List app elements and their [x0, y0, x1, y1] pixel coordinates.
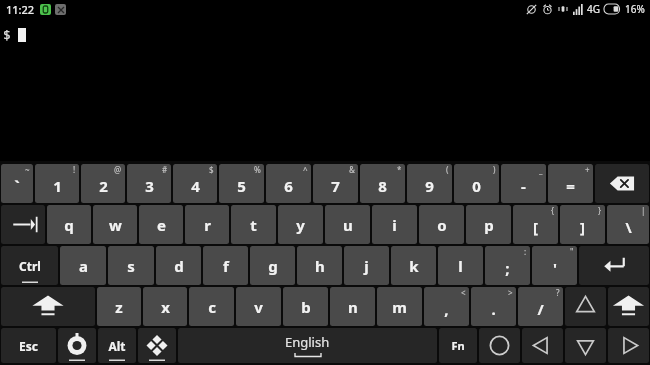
button[interactable]: Backspace	[595, 164, 649, 203]
button[interactable]: @	[81, 164, 125, 203]
button[interactable]: ^	[266, 164, 311, 203]
button[interactable]: Arrow down	[565, 328, 606, 363]
staticText: b	[301, 297, 311, 317]
staticText: 4G	[587, 2, 600, 16]
button[interactable]: i	[372, 205, 417, 244]
staticText: @	[114, 164, 122, 175]
button[interactable]: Symbols	[138, 328, 176, 363]
button[interactable]: Arrow up	[565, 287, 606, 326]
button[interactable]: e	[139, 205, 183, 244]
staticText: /	[537, 299, 544, 319]
button[interactable]: >	[471, 287, 516, 326]
button[interactable]: %	[219, 164, 264, 203]
button[interactable]: ?	[518, 287, 563, 326]
button[interactable]: p	[466, 205, 511, 244]
button[interactable]: h	[297, 246, 342, 285]
button[interactable]: k	[391, 246, 436, 285]
button[interactable]: q	[47, 205, 91, 244]
button[interactable]: z	[97, 287, 141, 326]
staticText: 4	[191, 176, 200, 196]
staticText: 8	[378, 176, 387, 196]
button[interactable]: Shift	[608, 287, 649, 326]
staticText: o	[437, 215, 447, 235]
button[interactable]: )	[454, 164, 499, 203]
button[interactable]: &	[313, 164, 358, 203]
button[interactable]: Esc	[1, 328, 56, 363]
button[interactable]: f	[203, 246, 248, 285]
button[interactable]: m	[377, 287, 422, 326]
button[interactable]: {	[513, 205, 558, 244]
staticText: "	[570, 246, 574, 257]
button[interactable]: "	[532, 246, 577, 285]
staticText: v	[254, 297, 263, 317]
staticText: $	[3, 26, 11, 44]
button[interactable]: t	[231, 205, 276, 244]
button[interactable]: |	[607, 205, 649, 244]
button[interactable]: s	[108, 246, 154, 285]
staticText: h	[315, 256, 325, 276]
staticText: )	[493, 164, 496, 175]
button[interactable]: +	[548, 164, 593, 203]
button[interactable]: j	[344, 246, 389, 285]
button[interactable]: <	[424, 287, 469, 326]
staticText: =	[566, 176, 575, 196]
button[interactable]: Enter	[579, 246, 649, 285]
button[interactable]: Arrow left	[522, 328, 563, 363]
staticText: a	[79, 256, 88, 276]
button[interactable]: }	[560, 205, 605, 244]
staticText: >	[508, 287, 513, 298]
button[interactable]: y	[278, 205, 323, 244]
staticText: 11:22	[6, 2, 35, 17]
button[interactable]: English	[178, 328, 437, 363]
staticText: Ctrl	[19, 258, 41, 274]
button[interactable]: r	[185, 205, 229, 244]
button[interactable]: Arrow right	[608, 328, 649, 363]
button[interactable]: a	[60, 246, 106, 285]
button[interactable]: v	[236, 287, 281, 326]
button[interactable]: c	[189, 287, 234, 326]
button[interactable]: Ctrl	[1, 246, 58, 285]
staticText: $	[209, 164, 214, 175]
button[interactable]: $	[173, 164, 217, 203]
button[interactable]: Tab	[1, 205, 45, 244]
button[interactable]: b	[283, 287, 328, 326]
button[interactable]: l	[438, 246, 483, 285]
staticText: 16%	[625, 2, 645, 16]
button[interactable]: o	[419, 205, 464, 244]
button[interactable]: w	[93, 205, 137, 244]
button[interactable]: _	[501, 164, 546, 203]
other: Battery 16 percent	[604, 4, 622, 14]
button[interactable]: !	[35, 164, 79, 203]
staticText: p	[484, 215, 494, 235]
staticText: c	[208, 297, 216, 317]
button[interactable]: Settings	[58, 328, 96, 363]
staticText: {	[551, 205, 555, 216]
staticText: t	[250, 215, 257, 235]
button[interactable]: Alt	[98, 328, 136, 363]
button[interactable]: g	[250, 246, 295, 285]
button[interactable]: :	[485, 246, 530, 285]
staticText: q	[64, 215, 74, 235]
button[interactable]: (	[407, 164, 452, 203]
staticText: x	[161, 297, 170, 317]
staticText: 6	[284, 176, 293, 196]
button[interactable]: n	[330, 287, 375, 326]
button[interactable]: x	[143, 287, 187, 326]
button[interactable]: Shift	[1, 287, 95, 326]
button[interactable]: #	[127, 164, 171, 203]
staticText: ,	[444, 299, 449, 319]
button[interactable]: Home	[479, 328, 520, 363]
button[interactable]: d	[156, 246, 201, 285]
staticText: #	[162, 164, 168, 175]
button[interactable]: Fn	[439, 328, 477, 363]
button[interactable]: ~	[1, 164, 33, 203]
staticText: n	[348, 297, 358, 317]
staticText: Esc	[19, 338, 38, 354]
staticText: \	[625, 217, 632, 237]
button[interactable]: u	[325, 205, 370, 244]
staticText: y	[296, 215, 305, 235]
staticText: 7	[331, 176, 340, 196]
staticText: ]	[580, 217, 585, 237]
staticText: _	[539, 164, 543, 175]
button[interactable]: *	[360, 164, 405, 203]
